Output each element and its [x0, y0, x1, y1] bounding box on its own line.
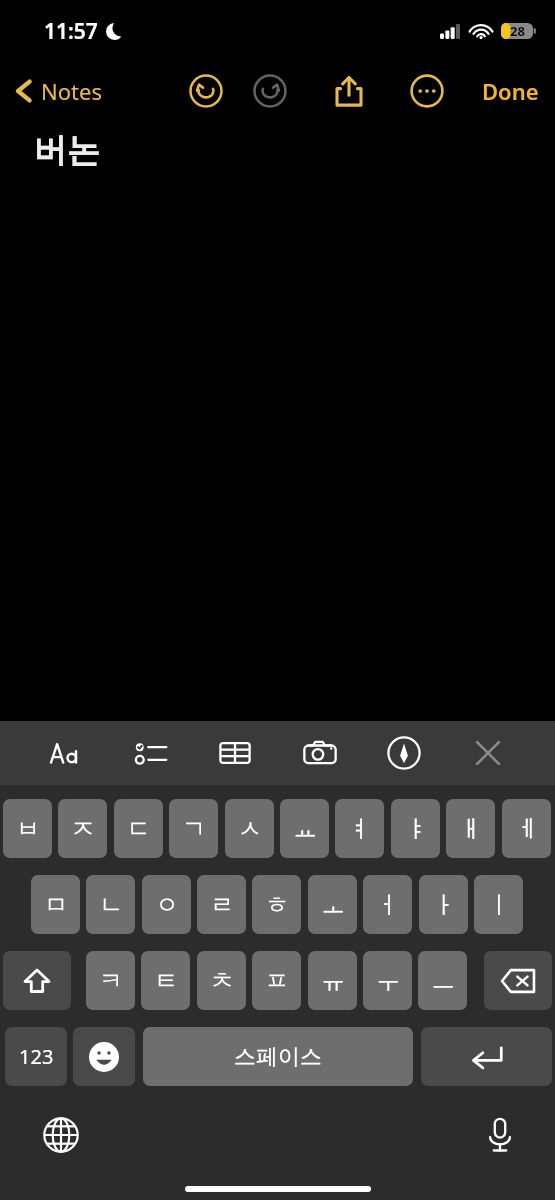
button[interactable]: 스페이스	[143, 1027, 413, 1086]
staticText: ㅍ	[265, 966, 289, 996]
staticText: Notes	[41, 76, 102, 106]
button[interactable]: ㅍ	[252, 951, 301, 1010]
button[interactable]: ㅋ	[86, 951, 135, 1010]
button[interactable]: Format	[44, 730, 90, 776]
button[interactable]: Redo	[249, 70, 291, 112]
staticText: 123	[19, 1043, 54, 1070]
staticText: 28	[510, 22, 525, 40]
button[interactable]: Checklist	[128, 730, 174, 776]
button[interactable]: ㅈ	[58, 799, 107, 858]
staticText: ㄹ	[210, 890, 234, 920]
staticText: ㄴ	[99, 890, 123, 920]
button[interactable]: ㄷ	[114, 799, 163, 858]
staticText: Done	[482, 76, 539, 106]
button[interactable]: ㄱ	[169, 799, 218, 858]
button[interactable]: Camera	[297, 730, 343, 776]
button[interactable]: Backspace	[484, 951, 552, 1010]
button[interactable]: ㅛ	[280, 799, 329, 858]
staticText: ㅗ	[321, 890, 345, 920]
button[interactable]: Emoji	[73, 1027, 135, 1086]
button[interactable]: ㄹ	[197, 875, 246, 934]
staticText: ㅌ	[154, 966, 178, 996]
button[interactable]: Markup	[381, 730, 427, 776]
button[interactable]: Return	[421, 1027, 552, 1086]
button[interactable]: ㅇ	[142, 875, 191, 934]
button[interactable]: ㅓ	[363, 875, 412, 934]
staticText: ㅓ	[376, 890, 400, 920]
button[interactable]: Done	[482, 76, 539, 106]
staticText: ㅠ	[321, 966, 345, 996]
staticText: ㄷ	[127, 814, 151, 844]
button[interactable]: ㅏ	[419, 875, 468, 934]
staticText: ㅕ	[348, 814, 372, 844]
staticText: ㅑ	[404, 814, 428, 844]
button[interactable]: ㅁ	[31, 875, 80, 934]
button[interactable]: ㅠ	[308, 951, 357, 1010]
staticText: ㅏ	[432, 890, 456, 920]
button[interactable]: ㅕ	[335, 799, 384, 858]
staticText: ㅈ	[71, 814, 95, 844]
staticText: ㅛ	[293, 814, 317, 844]
staticText: ㄱ	[182, 814, 206, 844]
button[interactable]: Dictate	[475, 1110, 525, 1160]
button[interactable]: ㅌ	[141, 951, 190, 1010]
button[interactable]: Undo	[185, 70, 227, 112]
button[interactable]: ㅑ	[391, 799, 440, 858]
staticText: ㅣ	[487, 890, 511, 920]
staticText: ㅎ	[265, 890, 289, 920]
button[interactable]: Table	[212, 730, 258, 776]
button[interactable]: ㅔ	[502, 799, 551, 858]
staticText: ㅜ	[376, 966, 400, 996]
button[interactable]: Share	[327, 69, 371, 113]
staticText: ㅐ	[459, 814, 483, 844]
button[interactable]: ㅣ	[474, 875, 523, 934]
button[interactable]: ㄴ	[86, 875, 135, 934]
staticText: ㅋ	[99, 966, 123, 996]
button[interactable]: ㅎ	[252, 875, 301, 934]
button[interactable]: ㅜ	[363, 951, 412, 1010]
staticText: ㅇ	[155, 890, 179, 920]
staticText: ㅁ	[44, 890, 68, 920]
staticText: ㅔ	[515, 814, 539, 844]
staticText: ㅅ	[238, 814, 262, 844]
staticText: ㅊ	[210, 966, 234, 996]
button[interactable]: ㅅ	[225, 799, 274, 858]
staticText: 스페이스	[234, 1043, 322, 1071]
staticText: 11:57	[44, 17, 98, 46]
button[interactable]: More	[406, 70, 448, 112]
button[interactable]: 123	[5, 1027, 67, 1086]
button[interactable]: ㅂ	[3, 799, 52, 858]
button[interactable]: ㅐ	[446, 799, 495, 858]
button[interactable]: Shift	[3, 951, 71, 1010]
button[interactable]: ㅊ	[197, 951, 246, 1010]
button[interactable]: Notes	[14, 76, 102, 106]
button[interactable]: Change keyboard	[36, 1110, 86, 1160]
button[interactable]: Close keyboard	[465, 730, 511, 776]
button[interactable]: ㅡ	[418, 951, 467, 1010]
button[interactable]: ㅗ	[308, 875, 357, 934]
staticText: ㅡ	[431, 966, 455, 996]
staticText: ㅂ	[16, 814, 40, 844]
staticText: 버논	[34, 130, 100, 172]
